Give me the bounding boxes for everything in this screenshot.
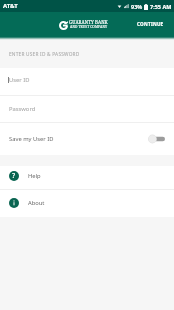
button[interactable]: Save my User ID toggle <box>148 134 165 144</box>
staticText: AND TRUST COMPANY <box>70 24 108 28</box>
staticText: ENTER USER ID & PASSWORD <box>9 51 80 58</box>
staticText: 7:55 AM <box>150 3 172 10</box>
staticText: AT&T <box>3 2 18 10</box>
staticText: About <box>28 199 45 207</box>
staticText: Help <box>28 172 41 180</box>
staticText: CONTINUE <box>137 21 164 27</box>
button[interactable]: CONTINUE <box>137 22 164 28</box>
staticText: ? <box>12 171 16 181</box>
button[interactable]: Save my User ID <box>0 123 174 155</box>
staticText: Password <box>9 105 36 113</box>
button[interactable]: User ID <box>0 68 174 95</box>
staticText: Save my User ID <box>9 135 54 143</box>
button[interactable]: About <box>0 190 174 217</box>
button[interactable]: ? <box>0 166 174 189</box>
button[interactable]: Password <box>0 96 174 122</box>
staticText: 93% <box>131 3 143 10</box>
staticText: GUARANTY BANK <box>69 19 108 25</box>
staticText: User ID <box>9 76 30 84</box>
